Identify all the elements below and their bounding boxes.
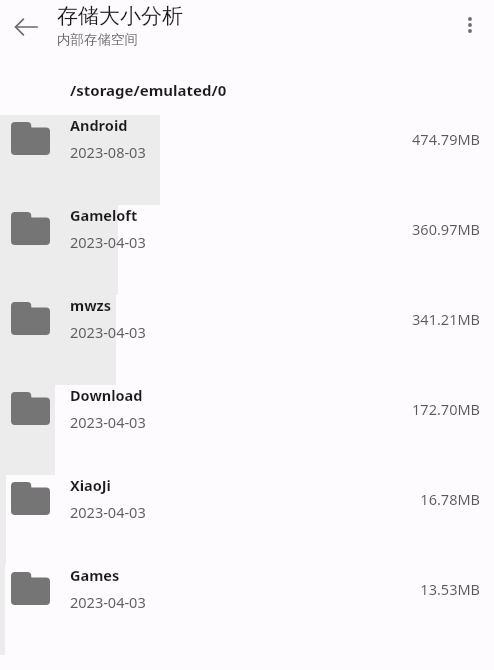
- button[interactable]: XiaoJi: [0, 475, 494, 565]
- staticText: Android: [70, 115, 128, 135]
- button[interactable]: Back: [2, 3, 50, 51]
- staticText: 2023-08-03: [70, 142, 146, 162]
- button[interactable]: mwzs: [0, 295, 494, 385]
- staticText: 2023-04-03: [70, 502, 146, 522]
- staticText: /storage/emulated/0: [70, 80, 227, 100]
- staticText: Games: [70, 565, 120, 585]
- button[interactable]: Games: [0, 565, 494, 655]
- staticText: 341.21MB: [412, 309, 480, 329]
- staticText: 2023-04-03: [70, 322, 146, 342]
- staticText: Gameloft: [70, 205, 138, 225]
- staticText: 2023-04-03: [70, 592, 146, 612]
- staticText: 内部存储空间: [57, 31, 138, 48]
- staticText: 16.78MB: [420, 489, 480, 509]
- staticText: 存储大小分析: [57, 3, 183, 29]
- staticText: Download: [70, 385, 143, 405]
- button[interactable]: Android: [0, 115, 494, 205]
- button[interactable]: Download: [0, 385, 494, 475]
- button[interactable]: More options: [446, 1, 494, 49]
- button[interactable]: Gameloft: [0, 205, 494, 295]
- staticText: XiaoJi: [70, 475, 111, 495]
- staticText: 474.79MB: [412, 129, 480, 149]
- staticText: 13.53MB: [420, 579, 480, 599]
- staticText: mwzs: [70, 295, 111, 315]
- staticText: 172.70MB: [412, 399, 480, 419]
- staticText: 2023-04-03: [70, 412, 146, 432]
- staticText: 360.97MB: [412, 219, 480, 239]
- staticText: 2023-04-03: [70, 232, 146, 252]
